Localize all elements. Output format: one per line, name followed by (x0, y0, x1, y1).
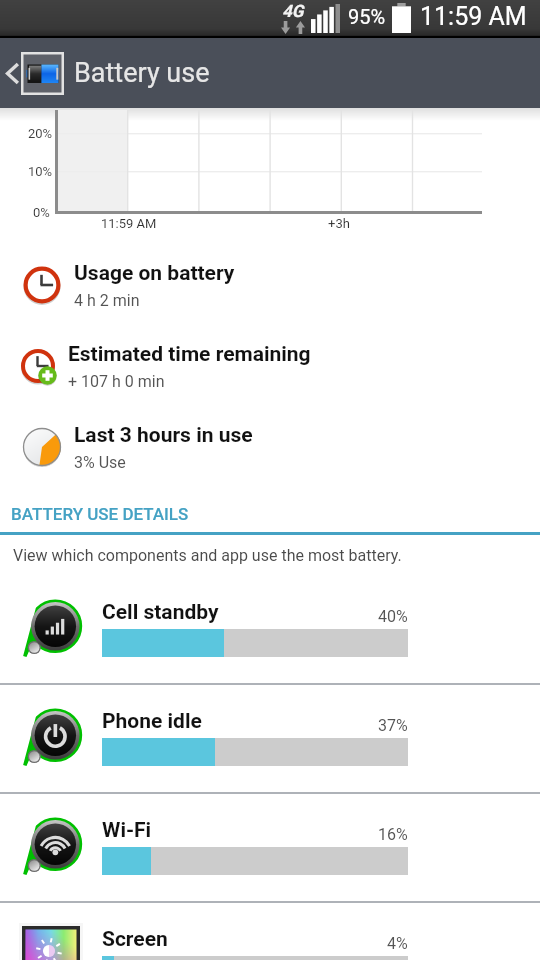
staticText: View which components and app use the mo… (13, 546, 402, 565)
button[interactable]: Phone idle (0, 693, 540, 792)
button[interactable]: Last 3 hours in use (0, 412, 540, 490)
staticText: BATTERY USE DETAILS (11, 504, 189, 524)
staticText: 10% (28, 164, 53, 179)
staticText: Usage on battery (74, 261, 235, 286)
staticText: 0% (33, 205, 50, 220)
staticText: Cell standby (102, 600, 219, 625)
staticText: +3h (328, 216, 350, 231)
staticText: Battery use (74, 57, 210, 89)
staticText: 4 h 2 min (74, 291, 140, 310)
button[interactable]: Back (0, 38, 540, 108)
button[interactable]: Cell standby (0, 584, 540, 683)
staticText: 3% Use (74, 453, 126, 472)
staticText: + 107 h 0 min (68, 372, 165, 391)
staticText: Screen (102, 927, 168, 952)
button[interactable]: Wi-Fi (0, 802, 540, 901)
staticText: 20% (28, 126, 53, 141)
staticText: 37% (378, 716, 408, 735)
staticText: 16% (378, 825, 408, 844)
staticText: Last 3 hours in use (74, 423, 253, 448)
button[interactable]: Estimated time remaining (0, 330, 540, 408)
staticText: 11:59 AM (101, 216, 157, 231)
staticText: 11:59 AM (420, 2, 527, 31)
button[interactable]: Usage on battery (0, 250, 540, 328)
button[interactable]: Screen (0, 911, 540, 960)
staticText: 4% (387, 934, 408, 953)
staticText: 95% (348, 5, 386, 28)
staticText: 40% (378, 607, 408, 626)
staticText: Phone idle (102, 709, 202, 734)
staticText: Wi-Fi (102, 818, 152, 843)
staticText: 4G (282, 1, 304, 21)
staticText: Estimated time remaining (68, 342, 311, 367)
